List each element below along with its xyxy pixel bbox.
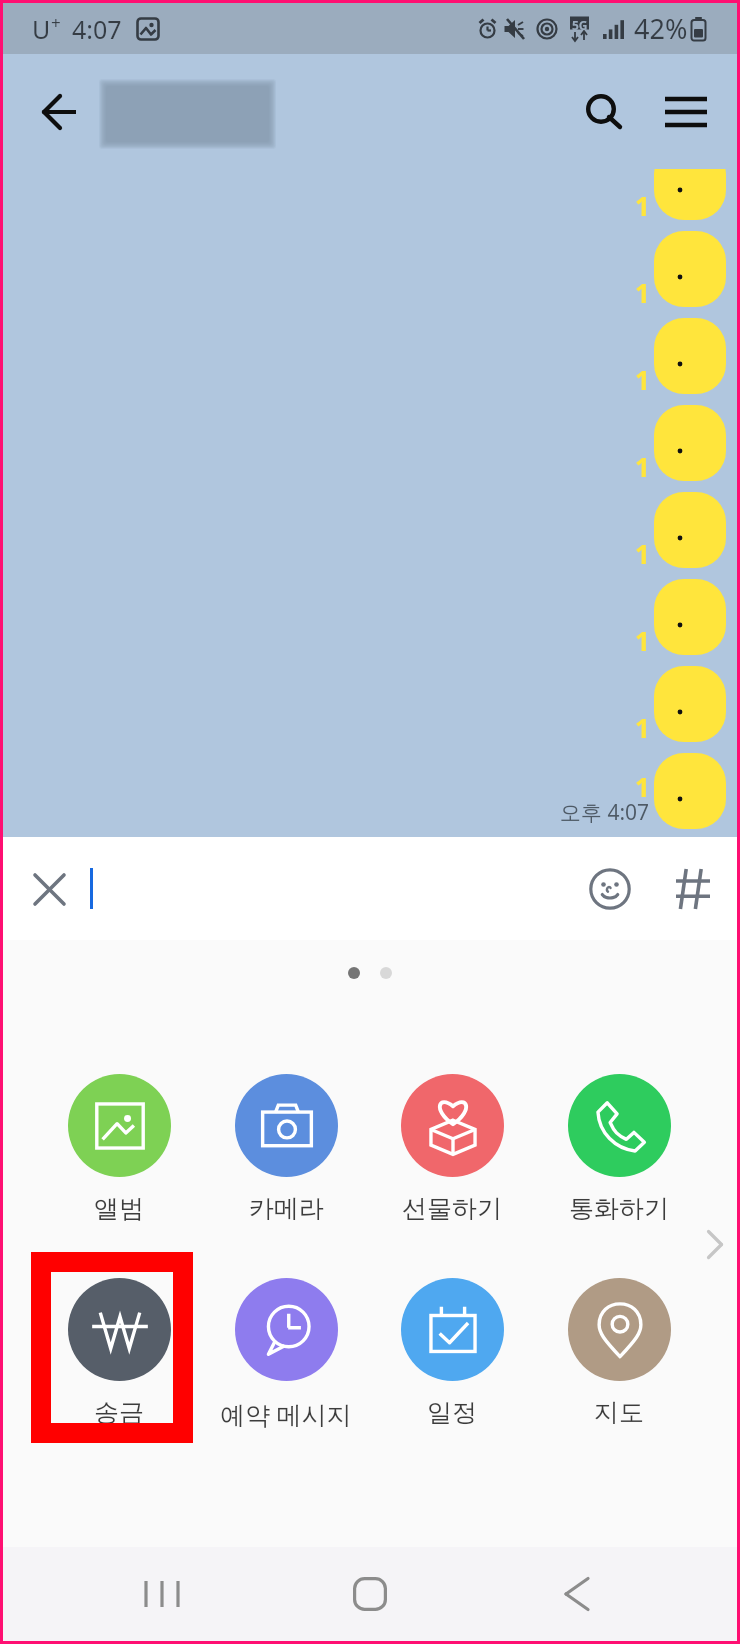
- staticText: 42%: [634, 10, 688, 47]
- staticText: 1: [635, 275, 650, 310]
- button[interactable]: 예약 메시지: [211, 1278, 361, 1431]
- staticText: 통화하기: [569, 1193, 669, 1224]
- button[interactable]: Message: [654, 666, 726, 742]
- button[interactable]: Hashtag: [663, 837, 723, 940]
- staticText: 1: [635, 449, 650, 484]
- staticText: 오후 4:07: [560, 798, 650, 827]
- staticText: 1: [635, 710, 650, 745]
- button[interactable]: Menu: [648, 54, 723, 169]
- button[interactable]: Back: [517, 1547, 637, 1641]
- button[interactable]: Message: [654, 753, 726, 829]
- staticText: 1: [635, 536, 650, 571]
- button[interactable]: Back: [16, 54, 104, 169]
- staticText: 선물하기: [402, 1193, 502, 1224]
- button[interactable]: Message: [654, 579, 726, 655]
- button[interactable]: 지도: [544, 1278, 694, 1428]
- staticText: 1: [635, 623, 650, 658]
- button[interactable]: Message: [654, 492, 726, 568]
- button[interactable]: Message: [654, 231, 726, 307]
- button[interactable]: 앨범: [44, 1074, 194, 1224]
- staticText: 4:07: [72, 12, 122, 46]
- button[interactable]: Close: [17, 857, 81, 921]
- staticText: +: [51, 11, 61, 34]
- button[interactable]: Home: [310, 1547, 430, 1641]
- button[interactable]: Next page: [686, 1214, 740, 1274]
- button[interactable]: Search: [565, 54, 643, 169]
- button[interactable]: 송금: [44, 1278, 194, 1428]
- button[interactable]: Message: [654, 144, 726, 220]
- button[interactable]: 통화하기: [544, 1074, 694, 1224]
- staticText: 카메라: [249, 1193, 324, 1224]
- button[interactable]: 카메라: [211, 1074, 361, 1224]
- staticText: 일정: [427, 1397, 477, 1428]
- button[interactable]: Message: [654, 318, 726, 394]
- button[interactable]: 일정: [377, 1278, 527, 1428]
- staticText: 1: [635, 769, 650, 804]
- button[interactable]: Emoji: [579, 837, 641, 940]
- staticText: 앨범: [94, 1193, 144, 1224]
- staticText: 지도: [594, 1397, 644, 1428]
- button[interactable]: Recents: [103, 1547, 223, 1641]
- staticText: 1: [635, 188, 650, 223]
- staticText: 송금: [94, 1397, 144, 1428]
- button[interactable]: 선물하기: [377, 1074, 527, 1224]
- staticText: 1: [635, 362, 650, 397]
- button[interactable]: Message: [654, 405, 726, 481]
- staticText: 예약 메시지: [220, 1397, 352, 1431]
- staticText: 5G: [572, 17, 588, 33]
- staticText: U: [32, 12, 51, 46]
